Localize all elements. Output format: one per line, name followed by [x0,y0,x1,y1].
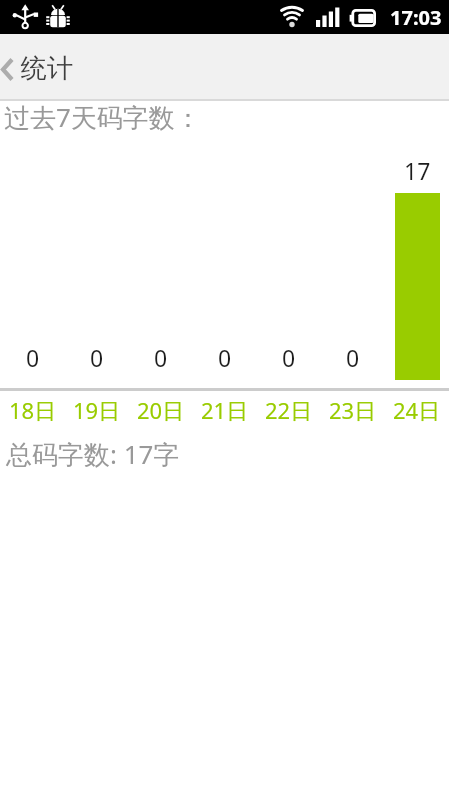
staticText: 0 [26,342,40,373]
staticText: 17:03 [390,4,442,31]
staticText: 21日 [201,395,249,425]
staticText: 0 [154,342,168,373]
staticText: 19日 [73,395,121,425]
staticText: 0 [218,342,232,373]
staticText: 过去7天码字数： [4,99,201,135]
staticText: 22日 [265,395,313,425]
button[interactable]: 统计 [0,34,449,99]
staticText: 总码字数: 17字 [6,436,180,472]
staticText: 24日 [393,395,441,425]
staticText: 统计 [21,52,73,85]
staticText: 0 [282,342,296,373]
staticText: 0 [90,342,104,373]
staticText: 23日 [329,395,377,425]
staticText: 18日 [9,395,57,425]
staticText: 17 [404,155,431,186]
staticText: 20日 [137,395,185,425]
staticText: 0 [346,342,360,373]
